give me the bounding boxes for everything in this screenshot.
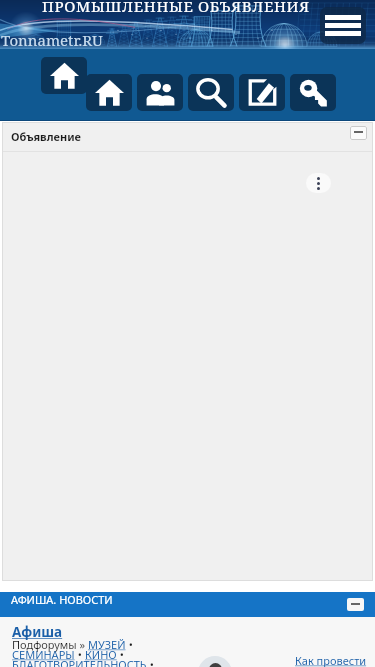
staticText: • [126, 637, 133, 652]
button[interactable]: Login [290, 74, 336, 111]
staticText: • [75, 647, 85, 662]
button[interactable]: Ad options [306, 173, 331, 193]
button[interactable]: Collapse [347, 598, 364, 611]
button[interactable]: Members [137, 74, 183, 111]
button[interactable]: КИНО [85, 647, 117, 662]
staticText: ПРОМЫШЛЕННЫЕ ОБЪЯВЛЕНИЯ [42, 0, 310, 16]
staticText: • [117, 647, 124, 662]
button[interactable]: БЛАГОТВОРИТЕЛЬНОСТЬ [12, 657, 147, 667]
button[interactable]: Search [188, 74, 234, 111]
staticText: Объявление [11, 129, 82, 144]
staticText: АФИША. НОВОСТИ [11, 592, 113, 607]
button[interactable]: СЕМИНАРЫ [12, 647, 75, 662]
button[interactable]: Как провести [295, 653, 367, 667]
button[interactable]: Menu [320, 7, 366, 44]
button[interactable]: Home [86, 74, 132, 111]
staticText: Tonnametr.RU [1, 30, 103, 50]
button[interactable]: Афиша [12, 623, 63, 641]
button[interactable]: Home [41, 57, 87, 94]
button[interactable]: Collapse [350, 126, 367, 140]
button[interactable]: Write [239, 74, 285, 111]
button[interactable]: МУЗЕЙ [88, 637, 126, 652]
staticText: • [147, 657, 154, 667]
staticText: Подфорумы » [12, 637, 88, 652]
